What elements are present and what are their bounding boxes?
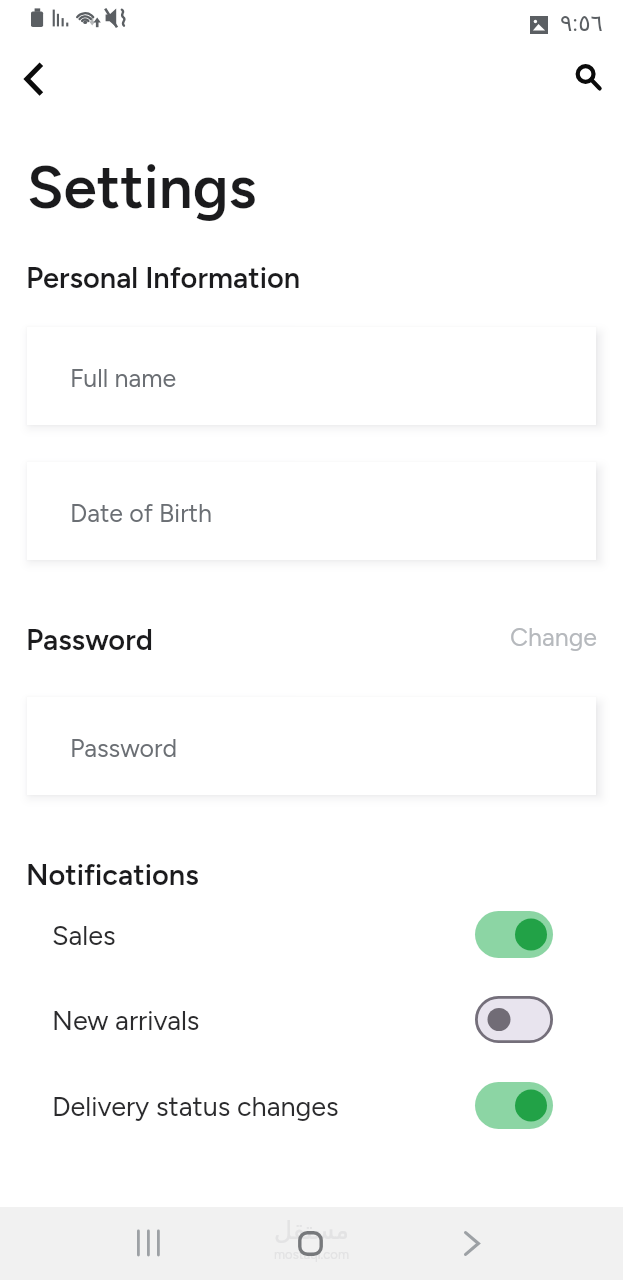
staticText: New arrivals: [52, 1004, 200, 1036]
staticText: Password: [70, 733, 178, 763]
button[interactable]: Password: [26, 622, 153, 657]
button[interactable]: Date of Birth: [27, 462, 596, 560]
button[interactable]: Back: [436, 1219, 508, 1267]
staticText: Date of Birth: [70, 498, 212, 528]
staticText: ٩:٥٦: [560, 9, 603, 37]
button[interactable]: Search: [560, 48, 612, 100]
button[interactable]: Back: [8, 53, 60, 105]
staticText: Settings: [27, 151, 257, 223]
button[interactable]: Password: [27, 697, 596, 795]
staticText: Sales: [52, 919, 116, 951]
staticText: Delivery status changes: [52, 1090, 339, 1122]
staticText: Full name: [70, 363, 177, 393]
button[interactable]: Home: [274, 1219, 346, 1267]
staticText: Notifications: [26, 857, 199, 892]
button[interactable]: Full name: [27, 327, 596, 425]
staticText: Change: [510, 622, 598, 652]
button[interactable]: New arrivals: [0, 977, 623, 1061]
staticText: Password: [26, 622, 153, 657]
staticText: مستقل: [274, 1216, 349, 1245]
button[interactable]: Delivery status changes: [0, 1063, 623, 1147]
button[interactable]: Recent apps: [112, 1219, 184, 1267]
staticText: mostaql.com: [274, 1247, 349, 1263]
button[interactable]: Change: [510, 622, 598, 652]
staticText: Personal Information: [26, 260, 301, 295]
button[interactable]: Sales: [0, 892, 623, 976]
